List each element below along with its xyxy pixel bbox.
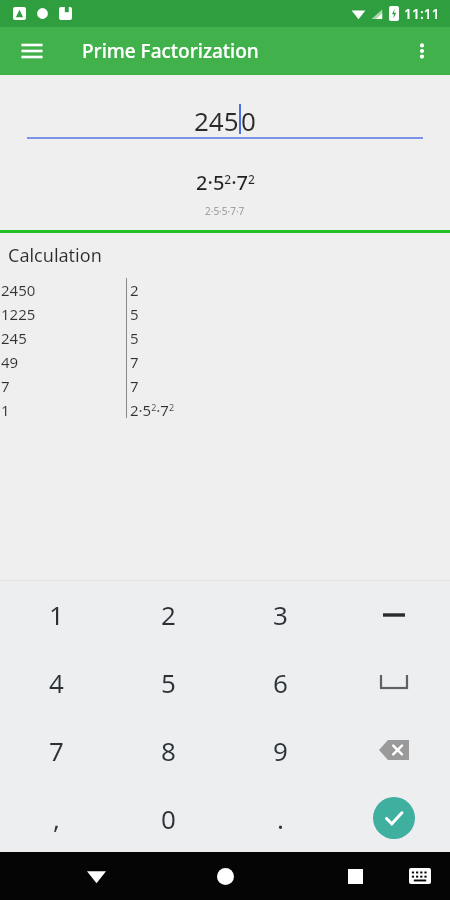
staticText: 6 (273, 665, 288, 700)
staticText: 2·52·72 (196, 169, 255, 196)
button[interactable]: 4 (0, 648, 112, 716)
staticText: 7 (130, 376, 139, 396)
staticText: 1 (1, 400, 10, 420)
staticText: 2·52·72 (130, 400, 175, 420)
button[interactable]: . (224, 784, 337, 852)
button[interactable]: Back (76, 856, 116, 896)
staticText: Prime Factorization (82, 38, 259, 64)
button[interactable]: 5 (112, 648, 224, 716)
staticText: 245 (1, 328, 27, 348)
staticText: 1225 (1, 304, 36, 324)
staticText: 7 (1, 376, 10, 396)
staticText: 11:11 (404, 4, 440, 23)
button[interactable]: Confirm (337, 784, 450, 852)
staticText: 1 (49, 597, 64, 632)
button[interactable]: 6 (224, 648, 337, 716)
staticText: 2·5·5·7·7 (205, 204, 245, 218)
staticText: 2 (130, 280, 139, 300)
staticText: 3 (273, 597, 288, 632)
button[interactable]: Switch keyboard (402, 858, 438, 894)
staticText: 4 (49, 665, 64, 700)
staticText: 5 (161, 665, 176, 700)
button[interactable]: 3 (224, 581, 337, 648)
button[interactable]: Space (337, 648, 450, 716)
button[interactable]: 1 (0, 581, 112, 648)
staticText: 0 (161, 801, 176, 836)
button[interactable]: 7 (0, 716, 112, 784)
staticText: 2 (161, 597, 176, 632)
staticText: 2450 (1, 280, 36, 300)
button[interactable]: 2 (112, 581, 224, 648)
staticText: 7 (49, 733, 64, 768)
button[interactable]: , (0, 784, 112, 852)
button[interactable]: Backspace (337, 716, 450, 784)
staticText: 7 (130, 352, 139, 372)
staticText: 49 (1, 352, 19, 372)
button[interactable]: 8 (112, 716, 224, 784)
button[interactable]: 9 (224, 716, 337, 784)
button[interactable]: More options (398, 27, 446, 75)
button[interactable]: Home (205, 856, 245, 896)
staticText: 5 (130, 328, 139, 348)
staticText: , (53, 801, 60, 836)
staticText: 0 (241, 103, 256, 135)
staticText: 5 (130, 304, 139, 324)
staticText: Calculation (8, 243, 102, 268)
staticText: 9 (273, 733, 288, 768)
staticText: 245 (194, 103, 239, 135)
staticText: . (277, 801, 284, 836)
button[interactable]: Minus (337, 581, 450, 648)
staticText: 8 (161, 733, 176, 768)
button[interactable]: Recent apps (335, 856, 375, 896)
button[interactable]: 0 (112, 784, 224, 852)
button[interactable]: Open navigation menu (8, 27, 56, 75)
